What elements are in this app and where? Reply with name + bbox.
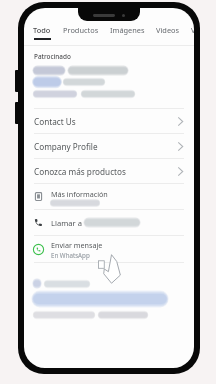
button[interactable]: Conozca más productos	[24, 159, 194, 183]
button[interactable]: Videos co	[189, 25, 194, 35]
button[interactable]: Más información	[24, 184, 194, 209]
button[interactable]: Llamar a	[24, 210, 194, 235]
button[interactable]: Productos	[61, 25, 101, 35]
staticText: Todo	[33, 25, 51, 35]
staticText: Conozca más productos	[34, 166, 177, 177]
button[interactable]: Company Profile	[24, 134, 194, 158]
staticText: En WhatsApp	[51, 251, 90, 259]
staticText: Llamar a	[51, 218, 82, 228]
staticText: Patrocinado	[34, 52, 71, 61]
staticText: Más información	[51, 189, 108, 199]
button[interactable]: Todo	[30, 25, 54, 40]
staticText: Company Profile	[34, 141, 177, 152]
button[interactable]: Contact Us	[24, 109, 194, 133]
button[interactable]: Imágenes	[108, 25, 147, 35]
button[interactable]: Videos	[154, 25, 182, 35]
staticText: Enviar mensaje	[51, 240, 103, 250]
staticText: Contact Us	[34, 116, 177, 127]
button[interactable]: Enviar mensaje	[24, 236, 194, 262]
